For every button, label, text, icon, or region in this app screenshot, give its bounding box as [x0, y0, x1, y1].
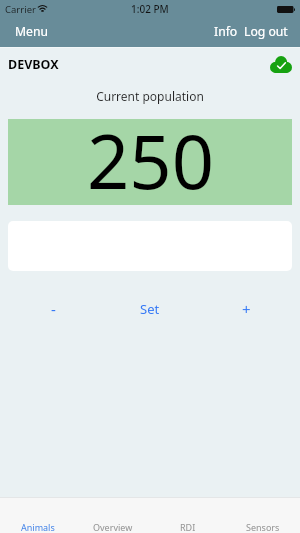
staticText: RDI — [180, 521, 196, 533]
staticText: Info — [214, 23, 238, 40]
button[interactable]: RDI — [150, 498, 225, 533]
button[interactable]: Menu — [0, 18, 58, 47]
button[interactable]: Sensors — [225, 498, 300, 533]
staticText: DEVBOX — [8, 56, 59, 73]
button[interactable]: Animals — [0, 498, 75, 533]
button[interactable]: Set — [101, 298, 198, 320]
staticText: - — [51, 299, 56, 319]
staticText: Carrier — [5, 3, 36, 16]
button[interactable]: Overview — [75, 498, 150, 533]
button[interactable]: - — [5, 298, 101, 320]
staticText: Log out — [244, 23, 288, 40]
button[interactable]: Log out — [241, 18, 300, 47]
staticText: Overview — [93, 521, 133, 533]
button[interactable]: Info — [211, 18, 241, 47]
button[interactable]: Sync status: synced — [270, 56, 292, 73]
staticText: Menu — [15, 23, 48, 40]
staticText: 1:02 PM — [131, 2, 169, 16]
staticText: Current population — [0, 88, 300, 104]
button[interactable]: + — [198, 298, 295, 320]
staticText: + — [242, 299, 251, 319]
staticText: Animals — [21, 521, 55, 533]
staticText: Set — [140, 300, 160, 318]
staticText: 250 — [87, 110, 214, 196]
staticText: Sensors — [246, 521, 280, 533]
